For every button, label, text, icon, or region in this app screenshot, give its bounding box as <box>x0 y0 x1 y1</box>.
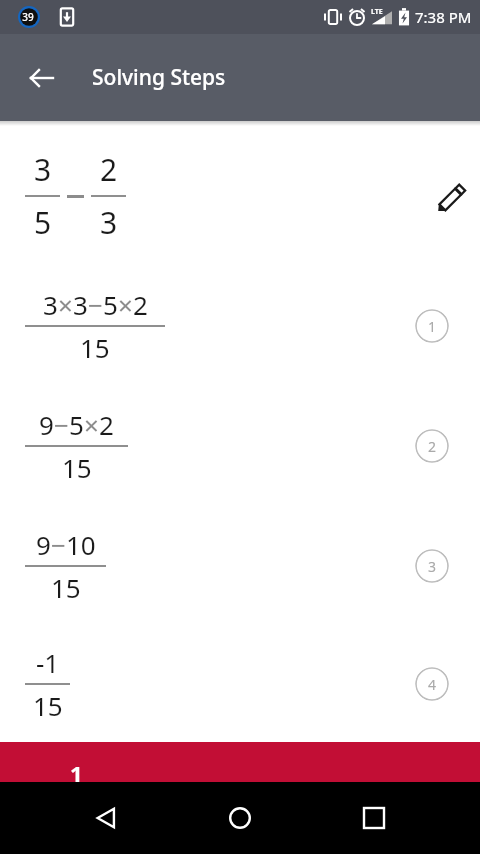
staticText: 2 <box>428 437 437 456</box>
staticText: 5 <box>69 407 84 442</box>
button[interactable]: Edit <box>424 168 480 224</box>
staticText: 15 <box>62 450 92 485</box>
staticText: LTE <box>371 7 383 17</box>
staticText: 1 <box>70 758 83 788</box>
staticText: − <box>88 287 103 322</box>
staticText: 7:38 PM <box>415 7 472 27</box>
staticText: − <box>51 527 66 562</box>
staticText: 3 <box>34 149 52 190</box>
staticText: 4 <box>428 675 437 694</box>
staticText: 9 <box>36 527 51 562</box>
staticText: 2 <box>99 407 114 442</box>
staticText: 3 <box>43 287 58 322</box>
staticText: 3 <box>428 557 437 576</box>
button[interactable]: Back <box>78 790 134 846</box>
button[interactable]: 1 <box>0 742 480 782</box>
button[interactable]: 9 <box>0 506 480 626</box>
staticText: × <box>58 287 73 322</box>
staticText: 2 <box>133 287 148 322</box>
button[interactable]: 3 <box>0 266 480 386</box>
staticText: × <box>118 287 133 322</box>
staticText: 10 <box>66 527 96 562</box>
staticText: 2 <box>100 149 118 190</box>
button[interactable]: Recent apps <box>346 790 402 846</box>
staticText: 1 <box>428 317 437 336</box>
staticText: 15 <box>80 330 110 365</box>
button[interactable]: 9 <box>0 386 480 506</box>
staticText: 39 <box>22 10 34 24</box>
staticText: 5 <box>103 287 118 322</box>
staticText: 15 <box>33 688 63 723</box>
staticText: Solving Steps <box>92 63 226 92</box>
staticText: 3 <box>73 287 88 322</box>
staticText: 5 <box>34 202 52 243</box>
button[interactable]: 3 <box>415 549 449 583</box>
button[interactable]: Back <box>14 50 70 106</box>
button[interactable]: Home <box>212 790 268 846</box>
button[interactable]: 1 <box>415 309 449 343</box>
staticText: 15 <box>51 570 81 605</box>
staticText: -1 <box>36 645 60 680</box>
staticText: − <box>54 407 69 442</box>
staticText: 9 <box>39 407 54 442</box>
staticText: × <box>84 407 99 442</box>
button[interactable]: 2 <box>415 429 449 463</box>
button[interactable]: 4 <box>415 667 449 701</box>
button[interactable]: -1 <box>0 626 480 742</box>
staticText: 3 <box>100 202 118 243</box>
